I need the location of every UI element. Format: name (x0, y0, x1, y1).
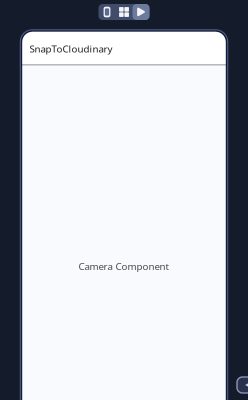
button[interactable]: Show live preview controls (237, 377, 248, 393)
button[interactable]: Preview variants (115, 4, 132, 20)
button[interactable]: Live preview (132, 4, 149, 20)
staticText: SnapToCloudinary (29, 42, 112, 55)
button[interactable]: Device preview (98, 4, 115, 20)
staticText: Camera Component (78, 259, 169, 273)
